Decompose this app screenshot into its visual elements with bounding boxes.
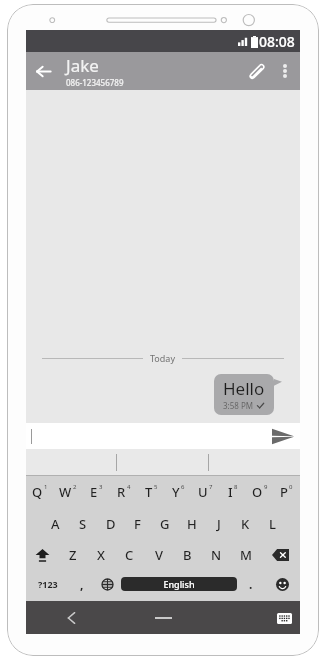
button[interactable]: Back <box>26 54 60 88</box>
staticText: F <box>134 515 141 533</box>
staticText: 1 <box>44 483 48 491</box>
staticText: G <box>160 515 170 533</box>
button[interactable]: . <box>237 570 264 598</box>
staticText: Today <box>150 352 175 364</box>
staticText: O <box>252 483 263 501</box>
button[interactable]: L <box>259 508 286 539</box>
staticText: Jake <box>66 54 99 77</box>
staticText: U <box>198 483 208 501</box>
button[interactable]: , <box>70 570 94 598</box>
staticText: 8 <box>234 483 238 491</box>
staticText: Q <box>32 483 43 501</box>
staticText: 7 <box>209 483 213 491</box>
button[interactable]: English <box>121 577 237 591</box>
button[interactable]: S <box>69 508 97 539</box>
staticText: 086-123456789 <box>66 77 124 88</box>
button[interactable] <box>209 449 300 476</box>
staticText: X <box>97 546 105 564</box>
button[interactable]: Z <box>59 539 87 570</box>
button[interactable]: T <box>138 476 165 508</box>
staticText: M <box>240 546 252 564</box>
staticText: Z <box>69 546 77 564</box>
staticText: P <box>280 483 288 501</box>
staticText: 4 <box>127 483 131 491</box>
staticText: V <box>155 546 163 564</box>
button[interactable]: N <box>202 539 231 570</box>
button[interactable]: Hide keyboard <box>274 608 294 628</box>
button[interactable]: G <box>151 508 178 539</box>
staticText: B <box>183 546 192 564</box>
button[interactable]: X <box>87 539 115 570</box>
button[interactable]: Back <box>26 601 116 634</box>
staticText: . <box>249 576 253 592</box>
staticText: E <box>90 483 98 501</box>
button[interactable]: K <box>232 508 259 539</box>
button[interactable]: Home <box>128 601 198 634</box>
staticText: ?123 <box>38 578 58 590</box>
staticText: S <box>79 515 87 533</box>
staticText: 6 <box>181 483 185 491</box>
button[interactable]: Emoji <box>264 570 300 598</box>
staticText: C <box>125 546 134 564</box>
staticText: 3:58 PM <box>223 400 254 411</box>
staticText: W <box>59 483 72 501</box>
staticText: D <box>106 515 116 533</box>
button[interactable]: A <box>41 508 69 539</box>
button[interactable]: Backspace <box>260 539 300 570</box>
button[interactable]: Q <box>26 476 54 508</box>
staticText: T <box>145 483 153 501</box>
button[interactable]: P <box>273 476 300 508</box>
staticText: Y <box>172 483 180 501</box>
staticText: K <box>241 515 250 533</box>
button[interactable]: V <box>144 539 173 570</box>
staticText: N <box>211 546 222 564</box>
staticText: , <box>80 576 84 592</box>
button[interactable]: Y <box>165 476 192 508</box>
staticText: 9 <box>264 483 268 491</box>
staticText: 08:08 <box>259 32 295 51</box>
staticText: A <box>51 515 60 533</box>
button[interactable]: More options <box>272 58 298 84</box>
button[interactable]: D <box>97 508 124 539</box>
button[interactable]: H <box>178 508 205 539</box>
button[interactable] <box>26 449 116 476</box>
staticText: 3 <box>99 483 103 491</box>
button[interactable]: Send <box>26 423 300 449</box>
button[interactable]: Attach <box>238 54 272 88</box>
button[interactable] <box>117 449 208 476</box>
staticText: R <box>117 483 126 501</box>
staticText: Hello <box>223 377 265 400</box>
staticText: I <box>228 483 233 501</box>
button[interactable]: O <box>246 476 273 508</box>
button[interactable]: J <box>205 508 232 539</box>
staticText: 5 <box>154 483 158 491</box>
button[interactable]: W <box>54 476 82 508</box>
button[interactable]: R <box>110 476 138 508</box>
button[interactable]: U <box>192 476 219 508</box>
button[interactable]: Hello <box>214 374 274 415</box>
button[interactable]: ?123 <box>26 570 70 598</box>
staticText: 2 <box>73 483 77 491</box>
button[interactable]: Change language <box>94 570 121 598</box>
button[interactable]: Shift <box>26 539 59 570</box>
staticText: L <box>269 515 276 533</box>
button[interactable]: I <box>219 476 246 508</box>
staticText: English <box>163 578 195 590</box>
staticText: H <box>187 515 197 533</box>
button[interactable]: Jake <box>66 54 238 88</box>
button[interactable]: F <box>124 508 151 539</box>
staticText: 0 <box>289 483 293 491</box>
button[interactable]: E <box>82 476 110 508</box>
button[interactable]: C <box>115 539 144 570</box>
button[interactable]: M <box>231 539 260 570</box>
staticText: J <box>217 515 221 533</box>
button[interactable]: B <box>173 539 202 570</box>
button[interactable]: Send <box>268 423 298 449</box>
